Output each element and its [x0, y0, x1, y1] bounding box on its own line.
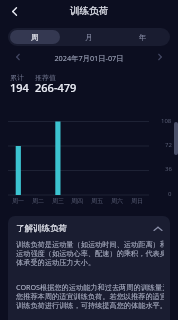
staticText: 周六 — [111, 197, 123, 205]
staticText: 72 — [165, 141, 172, 149]
staticText: 108 — [161, 117, 172, 125]
button[interactable]: 年 — [118, 30, 168, 44]
staticText: 您推荐本周的适宜训练负荷。若您以推荐的适宜 — [16, 292, 164, 301]
staticText: 训练负荷 — [70, 5, 108, 17]
staticText: 周五 — [91, 197, 103, 205]
staticText: 年 — [139, 33, 147, 42]
button[interactable]: Back — [5, 2, 23, 20]
staticText: 36 — [165, 165, 172, 173]
button[interactable]: Next week — [151, 48, 169, 66]
staticText: 周一 — [12, 197, 24, 205]
staticText: 了解训练负荷 — [16, 223, 67, 234]
button[interactable]: 月 — [64, 30, 114, 44]
staticText: COROS根据您的运动能力和过去两周的训练量为 — [16, 282, 164, 292]
staticText: 训练负荷是运动量（如运动时间、运动距离）和 — [16, 240, 164, 249]
staticText: 周 — [31, 33, 39, 42]
staticText: 0 — [168, 190, 172, 198]
staticText: 2024年7月01日-07日 — [0, 53, 178, 63]
staticText: 累计 — [10, 73, 24, 82]
staticText: 周二 — [32, 197, 44, 205]
staticText: 推荐值 — [35, 73, 56, 82]
staticText: 体承受的运动压力大小。 — [16, 258, 96, 267]
staticText: 周日 — [131, 197, 143, 205]
staticText: 训练负荷进行训练，可持续提高您的体能水平。 — [16, 301, 164, 310]
staticText: 266-479 — [35, 80, 77, 95]
staticText: 194 — [10, 80, 29, 95]
staticText: 月 — [85, 33, 93, 42]
button[interactable]: 了解训练负荷 — [16, 223, 164, 234]
staticText: 周三 — [52, 197, 64, 205]
staticText: 周四 — [71, 197, 83, 205]
button[interactable]: Previous week — [9, 48, 27, 66]
staticText: 运动强度（如运动心率、配速）的乘积，代表身 — [16, 249, 164, 258]
button[interactable]: 周 — [10, 30, 60, 44]
